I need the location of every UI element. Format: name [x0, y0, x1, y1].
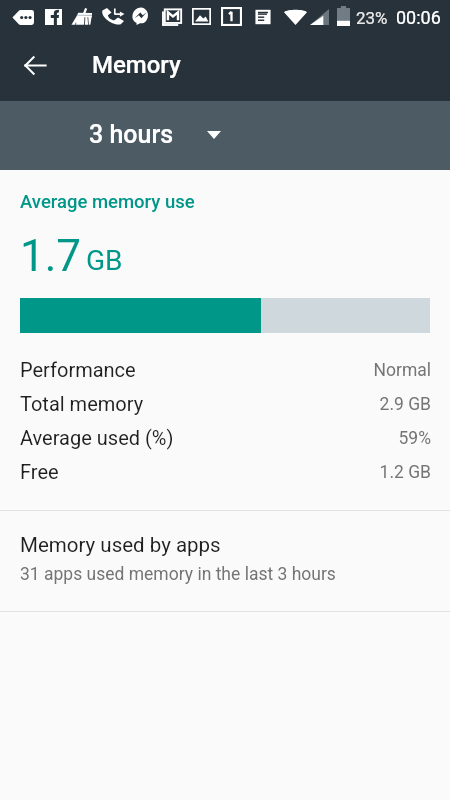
staticText: 59% [0, 428, 431, 449]
staticText: 1.7 [20, 230, 82, 282]
staticText: GB [86, 244, 123, 277]
staticText: 2.9 GB [0, 394, 431, 415]
button[interactable]: 3 hours [0, 101, 450, 170]
button[interactable]: Memory used by apps [0, 511, 450, 611]
staticText: Free [20, 460, 59, 483]
staticText: Memory [92, 51, 181, 79]
staticText: 31 apps used memory in the last 3 hours [20, 564, 336, 585]
staticText: 00:06 [396, 7, 441, 28]
staticText: Performance [20, 358, 136, 381]
staticText: 3 hours [89, 120, 174, 149]
staticText: Memory used by apps [20, 533, 221, 557]
staticText: 23% [356, 8, 388, 28]
staticText: Average used (%) [20, 426, 174, 449]
button[interactable]: Navigate up [13, 43, 57, 87]
staticText: Normal [0, 360, 431, 381]
staticText: Average memory use [20, 191, 195, 213]
staticText: 1.2 GB [0, 462, 431, 483]
staticText: Total memory [20, 392, 144, 415]
